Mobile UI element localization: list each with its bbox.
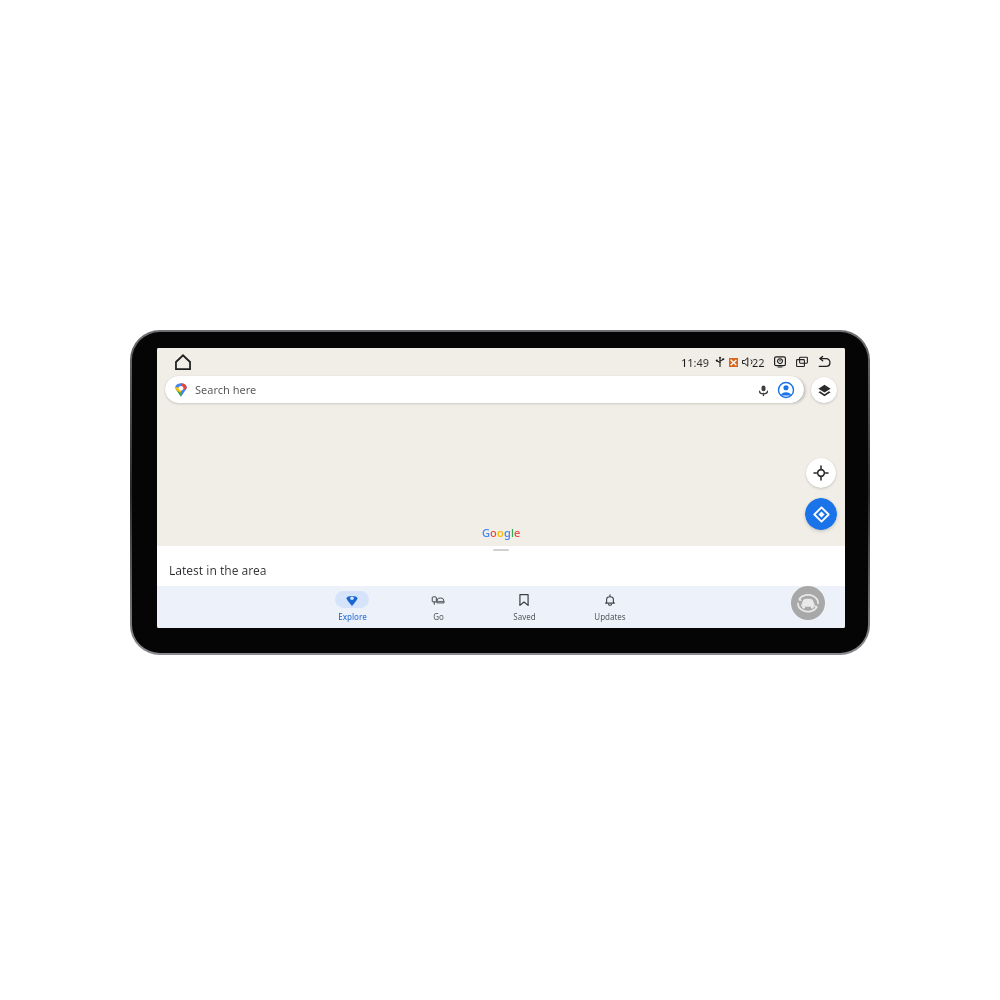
button[interactable]: Account	[777, 381, 795, 399]
staticText: 11:49	[681, 355, 710, 370]
staticText: Updates	[594, 611, 626, 622]
button[interactable]: Explore	[309, 586, 395, 628]
button[interactable]: Display settings	[771, 353, 789, 371]
button[interactable]: Updates	[567, 586, 653, 628]
button[interactable]: Map layers	[811, 377, 837, 403]
button[interactable]: My location	[806, 458, 836, 488]
staticText: Search here	[195, 382, 257, 397]
button[interactable]: Driving mode	[791, 586, 825, 620]
staticText: g	[504, 525, 511, 540]
staticText: Latest in the area	[169, 562, 267, 578]
staticText: e	[514, 525, 521, 540]
button[interactable]: Latest in the area	[157, 554, 845, 586]
staticText: o	[497, 525, 504, 540]
staticText: Go	[433, 611, 444, 622]
staticText: o	[490, 525, 497, 540]
button[interactable]: Home	[171, 350, 195, 374]
staticText: Saved	[513, 611, 536, 622]
button[interactable]: Go	[395, 586, 481, 628]
button[interactable]: Start navigation	[805, 498, 837, 530]
button[interactable]: Recent apps	[793, 353, 811, 371]
button[interactable]: Search here	[165, 376, 804, 403]
button[interactable]: Saved	[481, 586, 567, 628]
button[interactable]: Voice search	[754, 381, 772, 399]
staticText: G	[482, 525, 490, 540]
staticText: 22	[752, 355, 765, 370]
button[interactable]: Back	[815, 353, 833, 371]
staticText: l	[511, 525, 514, 540]
staticText: Explore	[338, 611, 367, 622]
